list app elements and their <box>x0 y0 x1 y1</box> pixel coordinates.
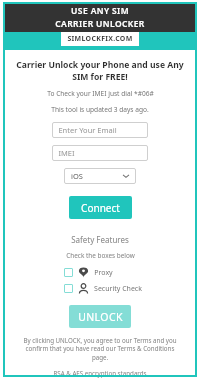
staticText: By clicking UNLOCK, you agree to our Ter… <box>17 336 183 361</box>
staticText: Safety Features <box>71 234 129 245</box>
staticText: Enter Your Email <box>58 125 117 135</box>
staticText: Check the boxes below <box>66 251 135 260</box>
button[interactable]: Security Check <box>54 283 146 294</box>
staticText: SIMLOCKFIX.COM <box>67 34 133 44</box>
staticText: To Check your IMEI just dial *#06# <box>47 89 154 98</box>
staticText: iOS <box>71 171 83 181</box>
staticText: UNLOCK <box>78 310 123 324</box>
button[interactable]: Select operating system <box>64 168 136 184</box>
staticText: CARRIER UNLOCKER <box>55 18 145 30</box>
staticText: This tool is updated 3 days ago. <box>51 105 149 114</box>
staticText: Carrier Unlock your Phone and use Any SI… <box>9 59 191 82</box>
button[interactable]: UNLOCK <box>69 305 131 328</box>
staticText: Security Check <box>94 284 142 294</box>
button[interactable]: Proxy <box>54 267 146 278</box>
staticText: RSA & AES encryption standards <box>53 369 147 377</box>
staticText: IMEI <box>58 148 75 158</box>
button[interactable]: Enter Your Email <box>52 122 148 138</box>
button[interactable]: Connect <box>69 196 132 219</box>
button[interactable]: SIMLOCKFIX.COM <box>61 32 139 46</box>
staticText: USE ANY SIM <box>71 5 129 17</box>
staticText: Connect <box>81 201 120 215</box>
staticText: Proxy <box>94 268 113 278</box>
button[interactable]: IMEI <box>52 145 148 161</box>
